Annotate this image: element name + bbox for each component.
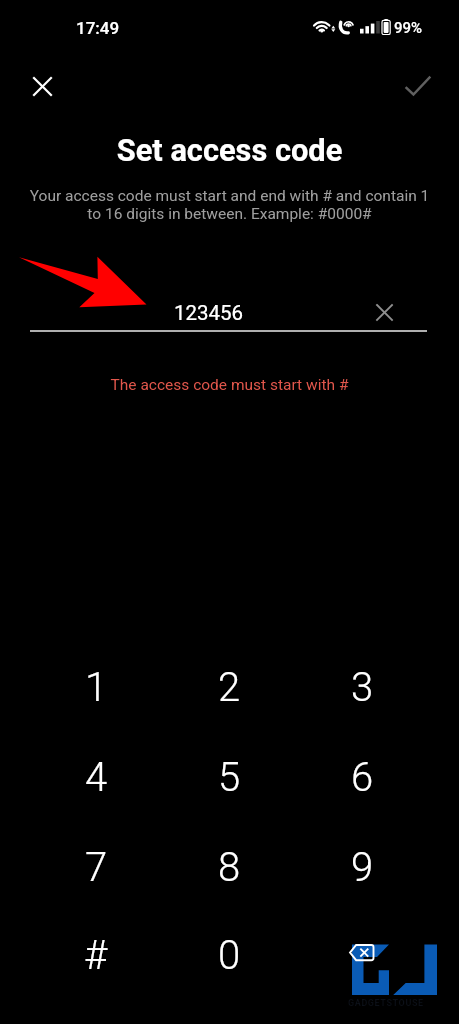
staticText: Your access code must start and end with… <box>27 187 432 223</box>
staticText: 4 <box>85 754 108 801</box>
button[interactable]: 9 <box>318 831 406 903</box>
staticText: GADGETSTOUSE <box>348 998 424 1009</box>
button[interactable]: 0 <box>185 919 273 991</box>
button[interactable]: # <box>52 919 140 991</box>
button[interactable]: 2 <box>185 651 273 723</box>
button[interactable]: Backspace <box>318 917 406 989</box>
staticText: 7 <box>85 844 108 891</box>
staticText: The access code must start with # <box>0 376 459 394</box>
staticText: 123456 <box>174 301 244 325</box>
staticText: 1 <box>85 664 108 711</box>
button[interactable]: 7 <box>52 831 140 903</box>
staticText: 6 <box>351 754 374 801</box>
button[interactable]: 6 <box>318 741 406 813</box>
button[interactable]: 8 <box>185 831 273 903</box>
button[interactable]: Close <box>19 63 65 109</box>
staticText: 0 <box>218 932 241 979</box>
button[interactable]: Confirm <box>395 63 441 109</box>
button[interactable]: 4 <box>52 741 140 813</box>
staticText: 8 <box>218 844 241 891</box>
button[interactable]: 3 <box>318 651 406 723</box>
button[interactable]: Clear text <box>363 292 406 333</box>
staticText: Set access code <box>0 132 459 168</box>
button[interactable]: 5 <box>185 741 273 813</box>
staticText: 9 <box>351 844 374 891</box>
staticText: # <box>84 932 108 979</box>
staticText: 5 <box>218 754 241 801</box>
staticText: 99% <box>394 19 423 37</box>
staticText: 2 <box>218 664 241 711</box>
staticText: 3 <box>351 664 374 711</box>
button[interactable]: 1 <box>52 651 140 723</box>
staticText: 17:49 <box>76 18 120 38</box>
